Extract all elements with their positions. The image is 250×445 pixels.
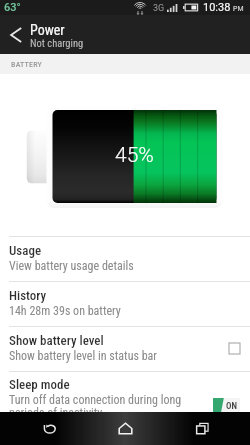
staticText: Show battery level in status bar	[9, 349, 157, 363]
staticText: Not charging	[30, 37, 84, 49]
button[interactable]: Home	[97, 412, 153, 445]
button[interactable]: Recent apps	[174, 412, 230, 445]
button[interactable]: Back	[21, 412, 77, 445]
button[interactable]: Back	[0, 15, 30, 54]
staticText: 45%	[115, 143, 154, 168]
staticText: Show battery level	[9, 333, 104, 348]
staticText: Power	[30, 22, 65, 38]
staticText: Turn off data connection during long per…	[9, 393, 182, 420]
button[interactable]: Usage	[0, 237, 250, 281]
button[interactable]: Sleep mode	[0, 372, 250, 428]
staticText: PM	[233, 5, 244, 13]
staticText: 10:38	[203, 1, 231, 14]
button[interactable]: Show battery level	[0, 327, 250, 371]
staticText: View battery usage details	[9, 259, 134, 273]
staticText: Sleep mode	[9, 377, 70, 392]
staticText: 3G	[153, 3, 165, 14]
button[interactable]: History	[0, 282, 250, 326]
staticText: ON	[226, 401, 237, 412]
staticText: 14h 28m 39s on battery	[9, 304, 121, 318]
staticText: 63°	[4, 1, 21, 14]
staticText: Usage	[9, 243, 42, 258]
staticText: BATTERY	[11, 60, 43, 69]
staticText: History	[9, 288, 47, 303]
